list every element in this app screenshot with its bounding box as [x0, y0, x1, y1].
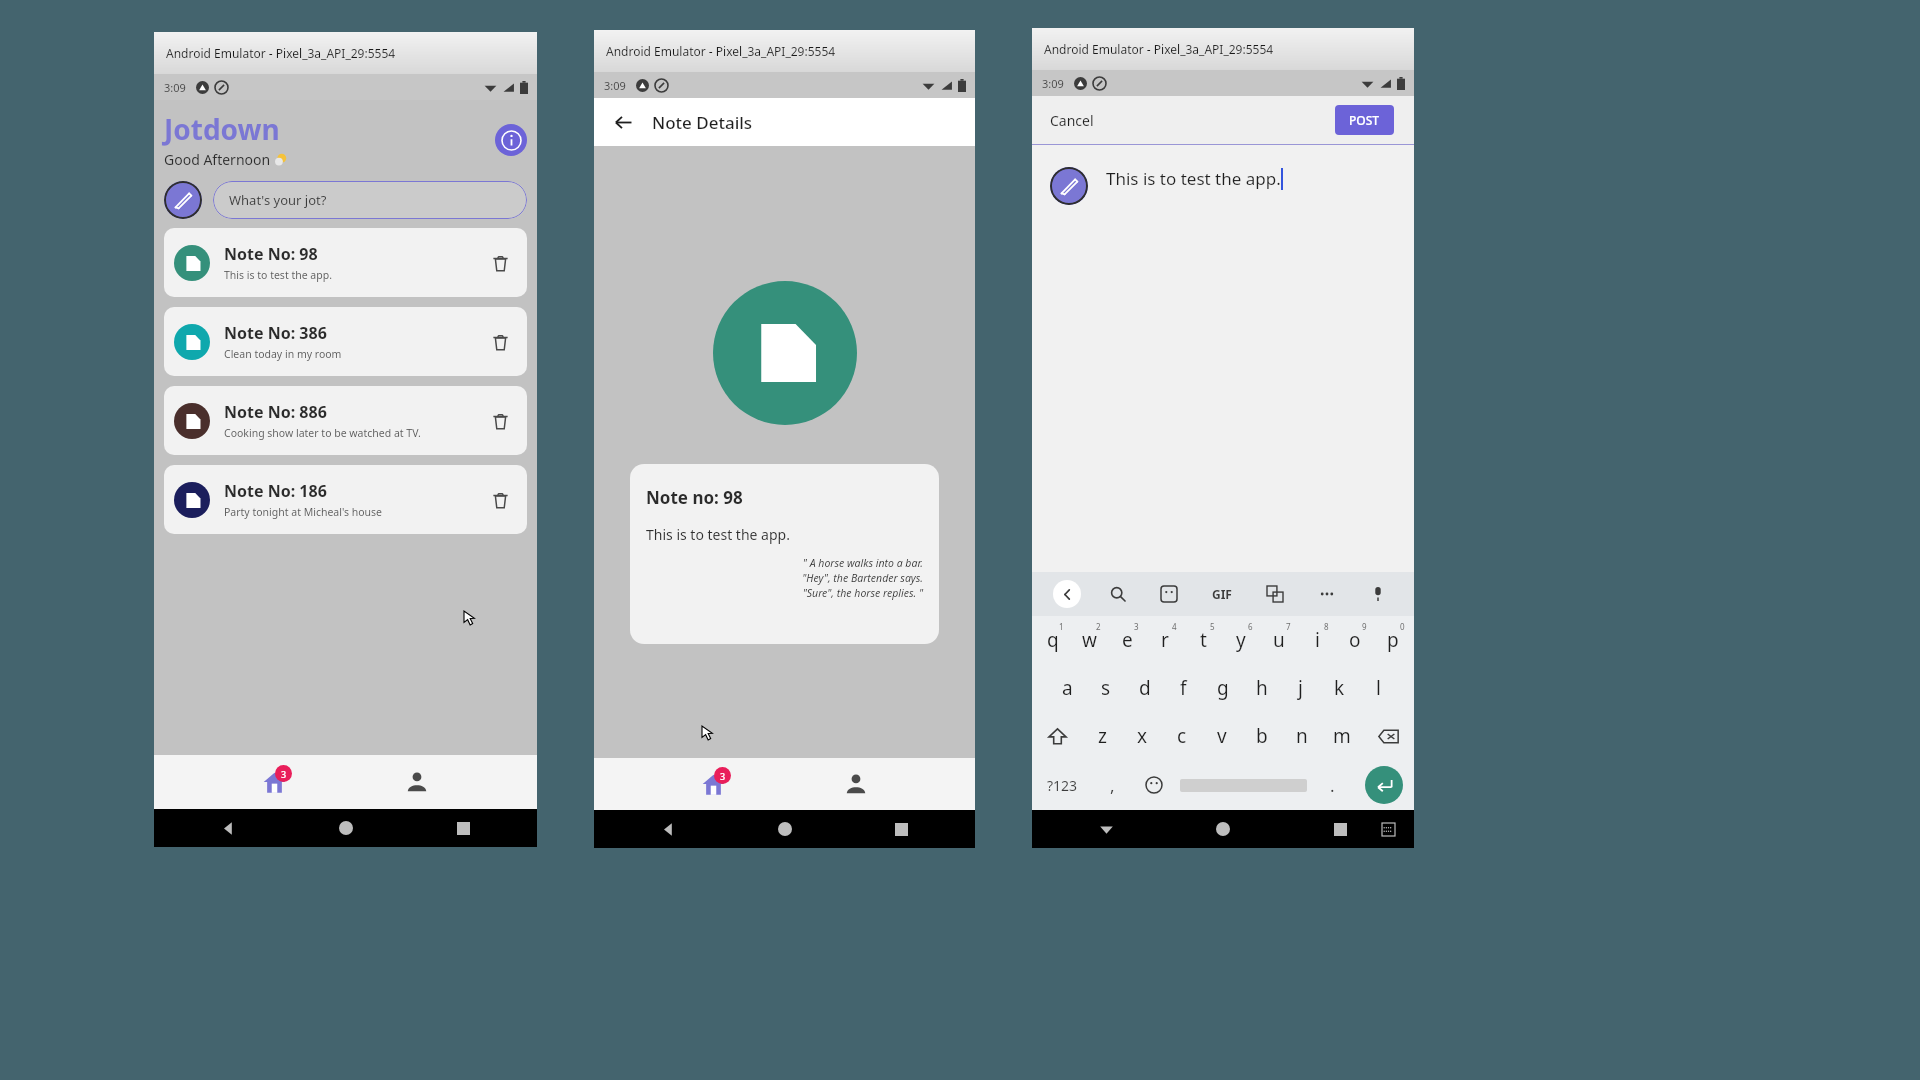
- staticText: 0: [1400, 621, 1405, 632]
- staticText: 2: [1096, 621, 1101, 632]
- button[interactable]: m: [1322, 712, 1362, 760]
- button[interactable]: Shift: [1032, 712, 1083, 760]
- button[interactable]: d: [1125, 664, 1164, 712]
- staticText: 9: [1362, 621, 1367, 632]
- button[interactable]: GIF: [1205, 577, 1239, 611]
- button[interactable]: e: [1108, 616, 1146, 664]
- button[interactable]: Note no: 98: [630, 464, 939, 644]
- button[interactable]: Note No: 98: [164, 228, 527, 297]
- button[interactable]: More options: [1312, 579, 1342, 609]
- button[interactable]: Space: [1174, 760, 1312, 810]
- staticText: y: [1236, 627, 1246, 653]
- staticText: o: [1349, 627, 1361, 653]
- button[interactable]: Home: [689, 760, 737, 808]
- button[interactable]: Recents: [889, 817, 913, 841]
- button[interactable]: Delete note: [483, 325, 517, 359]
- button[interactable]: Hide keyboard: [1094, 817, 1118, 841]
- button[interactable]: a: [1048, 664, 1086, 712]
- staticText: s: [1101, 675, 1111, 701]
- button[interactable]: ?123: [1032, 760, 1092, 810]
- button[interactable]: Back: [606, 105, 640, 139]
- button[interactable]: ,: [1092, 760, 1133, 810]
- button[interactable]: Recents: [451, 816, 475, 840]
- staticText: ?123: [1047, 776, 1078, 795]
- button[interactable]: z: [1083, 712, 1122, 760]
- button[interactable]: Recents: [1328, 817, 1352, 841]
- button[interactable]: Backspace: [1362, 712, 1414, 760]
- button[interactable]: p: [1374, 616, 1412, 664]
- staticText: q: [1047, 627, 1059, 653]
- staticText: t: [1200, 627, 1207, 653]
- button[interactable]: Back: [656, 817, 680, 841]
- button[interactable]: Profile: [832, 760, 880, 808]
- button[interactable]: r: [1146, 616, 1184, 664]
- button[interactable]: Home: [771, 815, 799, 843]
- button[interactable]: Switch input method: [1378, 819, 1398, 839]
- button[interactable]: b: [1242, 712, 1282, 760]
- button[interactable]: o: [1336, 616, 1374, 664]
- button[interactable]: .: [1312, 760, 1353, 810]
- button[interactable]: Delete note: [483, 404, 517, 438]
- staticText: h: [1256, 675, 1268, 701]
- button[interactable]: w: [1071, 616, 1108, 664]
- staticText: i: [1315, 627, 1320, 653]
- button[interactable]: Profile: [393, 758, 441, 806]
- staticText: .: [1330, 774, 1335, 797]
- staticText: f: [1180, 675, 1187, 701]
- button[interactable]: Home: [332, 814, 360, 842]
- staticText: Android Emulator - Pixel_3a_API_29:5554: [166, 45, 396, 61]
- button[interactable]: Previous: [1053, 580, 1081, 608]
- button[interactable]: Home: [250, 758, 298, 806]
- button[interactable]: Note No: 386: [164, 307, 527, 376]
- button[interactable]: Translate: [1260, 579, 1290, 609]
- button[interactable]: l: [1359, 664, 1398, 712]
- staticText: Clean today in my room: [224, 347, 342, 361]
- staticText: 5: [1210, 621, 1215, 632]
- staticText: g: [1217, 675, 1229, 701]
- button[interactable]: Enter: [1365, 766, 1403, 804]
- staticText: c: [1177, 723, 1187, 749]
- button[interactable]: Note No: 186: [164, 465, 527, 534]
- staticText: ,: [1110, 774, 1115, 797]
- button[interactable]: f: [1164, 664, 1203, 712]
- button[interactable]: Info: [495, 124, 527, 156]
- button[interactable]: Emoji: [1133, 760, 1174, 810]
- button[interactable]: j: [1281, 664, 1320, 712]
- staticText: 3:09: [164, 80, 186, 95]
- button[interactable]: Back: [216, 816, 240, 840]
- button[interactable]: g: [1203, 664, 1242, 712]
- staticText: 3: [720, 770, 726, 782]
- button[interactable]: Home: [1209, 815, 1237, 843]
- staticText: w: [1082, 627, 1097, 653]
- button[interactable]: t: [1184, 616, 1222, 664]
- button[interactable]: Cancel: [1050, 111, 1094, 130]
- staticText: d: [1139, 675, 1151, 701]
- button[interactable]: Search: [1103, 579, 1133, 609]
- button[interactable]: c: [1162, 712, 1202, 760]
- button[interactable]: What's your jot?: [213, 181, 527, 219]
- button[interactable]: Voice input: [1363, 579, 1393, 609]
- button[interactable]: x: [1122, 712, 1162, 760]
- staticText: Jotdown: [164, 110, 280, 148]
- button[interactable]: Stickers: [1154, 579, 1184, 609]
- button[interactable]: Delete note: [483, 483, 517, 517]
- staticText: r: [1161, 627, 1169, 653]
- button[interactable]: POST: [1335, 105, 1394, 135]
- staticText: b: [1256, 723, 1268, 749]
- staticText: GIF: [1212, 586, 1232, 602]
- button[interactable]: q: [1034, 616, 1071, 664]
- staticText: 8: [1324, 621, 1329, 632]
- button[interactable]: k: [1320, 664, 1359, 712]
- button[interactable]: y: [1222, 616, 1260, 664]
- button[interactable]: Note No: 886: [164, 386, 527, 455]
- button[interactable]: v: [1202, 712, 1242, 760]
- staticText: Note no: 98: [646, 486, 743, 509]
- staticText: 6: [1248, 621, 1253, 632]
- button[interactable]: u: [1260, 616, 1298, 664]
- staticText: p: [1387, 627, 1399, 653]
- button[interactable]: Delete note: [483, 246, 517, 280]
- button[interactable]: h: [1242, 664, 1281, 712]
- button[interactable]: s: [1086, 664, 1125, 712]
- button[interactable]: i: [1298, 616, 1336, 664]
- button[interactable]: n: [1282, 712, 1322, 760]
